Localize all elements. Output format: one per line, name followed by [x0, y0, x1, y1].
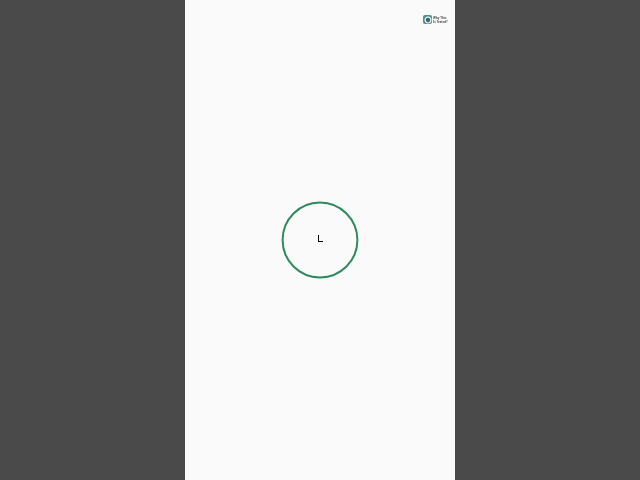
button[interactable]: Why This Is Tested	[423, 15, 448, 24]
staticText: Why This	[433, 16, 447, 20]
other: Why This Is Tested	[423, 15, 432, 24]
button[interactable]: Loading	[277, 197, 363, 283]
staticText: Is Tested?	[433, 20, 448, 24]
